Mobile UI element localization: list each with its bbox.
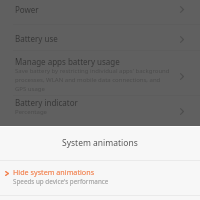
staticText: Manage apps battery usage	[15, 56, 120, 67]
staticText: Battery indicator	[15, 97, 78, 108]
staticText: System animations	[62, 137, 138, 149]
other: Open Battery use	[180, 36, 184, 43]
staticText: Save battery by restricting individual a…	[15, 67, 170, 93]
staticText: Percentage	[15, 108, 47, 116]
button[interactable]: Battery indicator	[0, 91, 200, 126]
staticText: Battery use	[15, 33, 58, 44]
other: Open Battery indicator	[180, 108, 184, 115]
button[interactable]: Hide system animations	[0, 161, 200, 195]
other: Open Manage apps battery usage	[180, 73, 184, 80]
button[interactable]: Manage apps battery usage	[0, 50, 200, 95]
staticText: Hide system animations	[13, 167, 95, 177]
staticText: Speeds up device's performance	[13, 177, 109, 186]
button[interactable]: Power	[0, 0, 200, 24]
staticText: Power	[15, 4, 39, 15]
other: Hide system animations	[5, 171, 9, 176]
other: Open Power	[180, 6, 184, 13]
button[interactable]: Battery use	[0, 27, 200, 50]
